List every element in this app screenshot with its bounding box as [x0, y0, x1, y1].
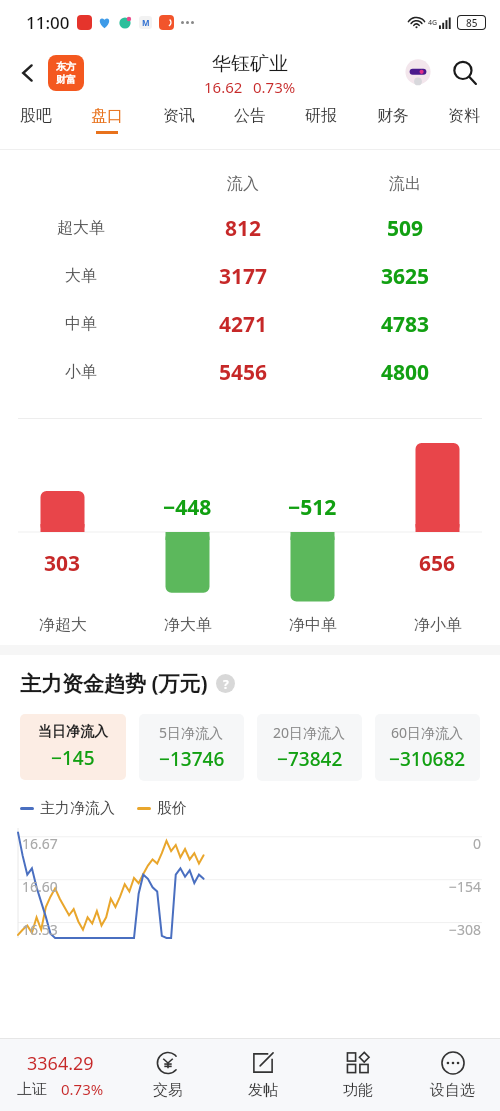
staticText: 超大单: [57, 218, 105, 238]
button[interactable]: 当日净流入: [20, 714, 126, 780]
staticText: −73842: [277, 746, 343, 772]
staticText: 0.73%: [253, 77, 296, 97]
button[interactable]: 3364.29: [0, 1045, 120, 1105]
staticText: 5日净流入: [159, 723, 224, 742]
staticText: 资料: [448, 106, 480, 126]
button[interactable]: 研报: [303, 102, 339, 138]
staticText: 16.67: [22, 834, 58, 853]
staticText: 中单: [65, 314, 97, 334]
staticText: 功能: [343, 1081, 373, 1100]
staticText: ?: [223, 676, 229, 692]
staticText: 3364.29: [27, 1051, 94, 1076]
staticText: 16.60: [22, 877, 58, 896]
button[interactable]: Back: [10, 55, 46, 91]
button[interactable]: AI assistant: [398, 53, 438, 93]
staticText: 5456: [219, 358, 268, 387]
staticText: 设自选: [430, 1081, 475, 1100]
staticText: 85: [466, 16, 478, 29]
staticText: 3177: [219, 262, 268, 291]
staticText: 东方: [56, 60, 76, 73]
button[interactable]: Search: [444, 52, 486, 94]
staticText: 大单: [65, 266, 97, 286]
staticText: 812: [225, 214, 262, 243]
button[interactable]: 交易: [120, 1045, 215, 1106]
staticText: 研报: [305, 106, 337, 126]
staticText: −448: [163, 493, 212, 522]
button[interactable]: 功能: [310, 1045, 405, 1106]
staticText: 净小单: [414, 615, 462, 635]
button[interactable]: 5日净流入: [139, 714, 244, 781]
staticText: −154: [449, 877, 482, 896]
staticText: 60日净流入: [391, 723, 464, 742]
staticText: 流出: [389, 174, 421, 194]
staticText: 4783: [381, 310, 430, 339]
staticText: 资讯: [163, 106, 195, 126]
staticText: 20日净流入: [273, 723, 346, 742]
staticText: 流入: [227, 174, 259, 194]
staticText: 16.53: [22, 920, 58, 938]
staticText: 4271: [219, 310, 268, 339]
button[interactable]: 60日净流入: [375, 714, 480, 781]
staticText: −310682: [389, 746, 466, 772]
staticText: 0.73%: [61, 1079, 104, 1099]
staticText: −13746: [159, 746, 225, 772]
staticText: 发帖: [248, 1081, 278, 1100]
staticText: 16.62: [204, 77, 243, 97]
staticText: −308: [449, 920, 482, 938]
button[interactable]: 财务: [375, 102, 411, 138]
button[interactable]: 资料: [446, 102, 482, 138]
staticText: 财富: [56, 73, 76, 86]
button[interactable]: 设自选: [405, 1045, 500, 1106]
button[interactable]: East Money logo: [48, 55, 84, 91]
staticText: 上证: [17, 1080, 47, 1099]
staticText: 股吧: [20, 106, 52, 126]
staticText: 公告: [234, 106, 266, 126]
staticText: −145: [51, 745, 95, 771]
staticText: 主力净流入: [40, 799, 115, 818]
staticText: 656: [419, 549, 456, 578]
staticText: 小单: [65, 362, 97, 382]
staticText: 交易: [153, 1081, 183, 1100]
button[interactable]: 发帖: [215, 1045, 310, 1106]
staticText: 华钰矿业: [212, 52, 288, 76]
staticText: 净超大: [39, 615, 87, 635]
staticText: 0: [473, 834, 482, 853]
button[interactable]: 20日净流入: [257, 714, 362, 781]
staticText: 当日净流入: [38, 723, 108, 741]
staticText: 3625: [381, 262, 430, 291]
button[interactable]: 公告: [232, 102, 268, 138]
staticText: 净中单: [289, 615, 337, 635]
staticText: 303: [44, 549, 81, 578]
staticText: 盘口: [91, 106, 123, 126]
staticText: 11:00: [26, 11, 70, 34]
staticText: 财务: [377, 106, 409, 126]
staticText: 4800: [381, 358, 430, 387]
staticText: 净大单: [164, 615, 212, 635]
button[interactable]: Help: [216, 674, 235, 693]
staticText: 主力资金趋势 (万元): [20, 669, 208, 698]
button[interactable]: 股吧: [18, 102, 54, 138]
button[interactable]: 资讯: [161, 102, 197, 138]
staticText: 4G: [428, 18, 438, 28]
staticText: 股价: [157, 799, 187, 818]
staticText: M: [142, 17, 150, 28]
staticText: −512: [288, 493, 337, 522]
staticText: 509: [387, 214, 424, 243]
button[interactable]: 盘口: [89, 102, 125, 138]
